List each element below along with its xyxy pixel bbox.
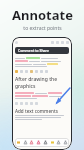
button[interactable]: Underline (23, 140, 28, 145)
button[interactable]: Crop (56, 140, 61, 145)
button[interactable]: Item 2 (25, 70, 28, 73)
button[interactable]: Pen (36, 140, 41, 145)
button[interactable]: Strikethrough (29, 140, 34, 145)
staticText: Annotate (12, 6, 73, 24)
button[interactable]: Item 4 (35, 102, 38, 105)
button[interactable]: Item 5 (40, 70, 43, 73)
button[interactable]: Item 2 (25, 102, 28, 105)
staticText: graphics (15, 83, 36, 90)
button[interactable]: Item 0 (15, 102, 18, 105)
button[interactable]: Back (15, 41, 18, 44)
button[interactable]: Highlight (16, 140, 21, 145)
button[interactable]: Item 4 (35, 70, 38, 73)
button[interactable]: Note (50, 140, 55, 145)
button[interactable]: Item 3 (30, 70, 33, 73)
button[interactable]: Item 0 (15, 70, 18, 73)
staticText: Comment to Share (18, 48, 49, 53)
staticText: to extract points (23, 25, 62, 32)
other: Annotation arrow (53, 87, 71, 107)
staticText: After drawing the (15, 76, 58, 83)
button[interactable]: Comment to Share (15, 47, 69, 54)
button[interactable]: Shapes (43, 140, 48, 145)
staticText: Add text comments (15, 108, 58, 114)
button[interactable]: Item 1 (20, 102, 23, 105)
button[interactable]: Item 6 (45, 70, 48, 73)
button[interactable]: Item 1 (20, 70, 23, 73)
button[interactable]: Item 3 (30, 102, 33, 105)
button[interactable]: More (63, 140, 68, 145)
